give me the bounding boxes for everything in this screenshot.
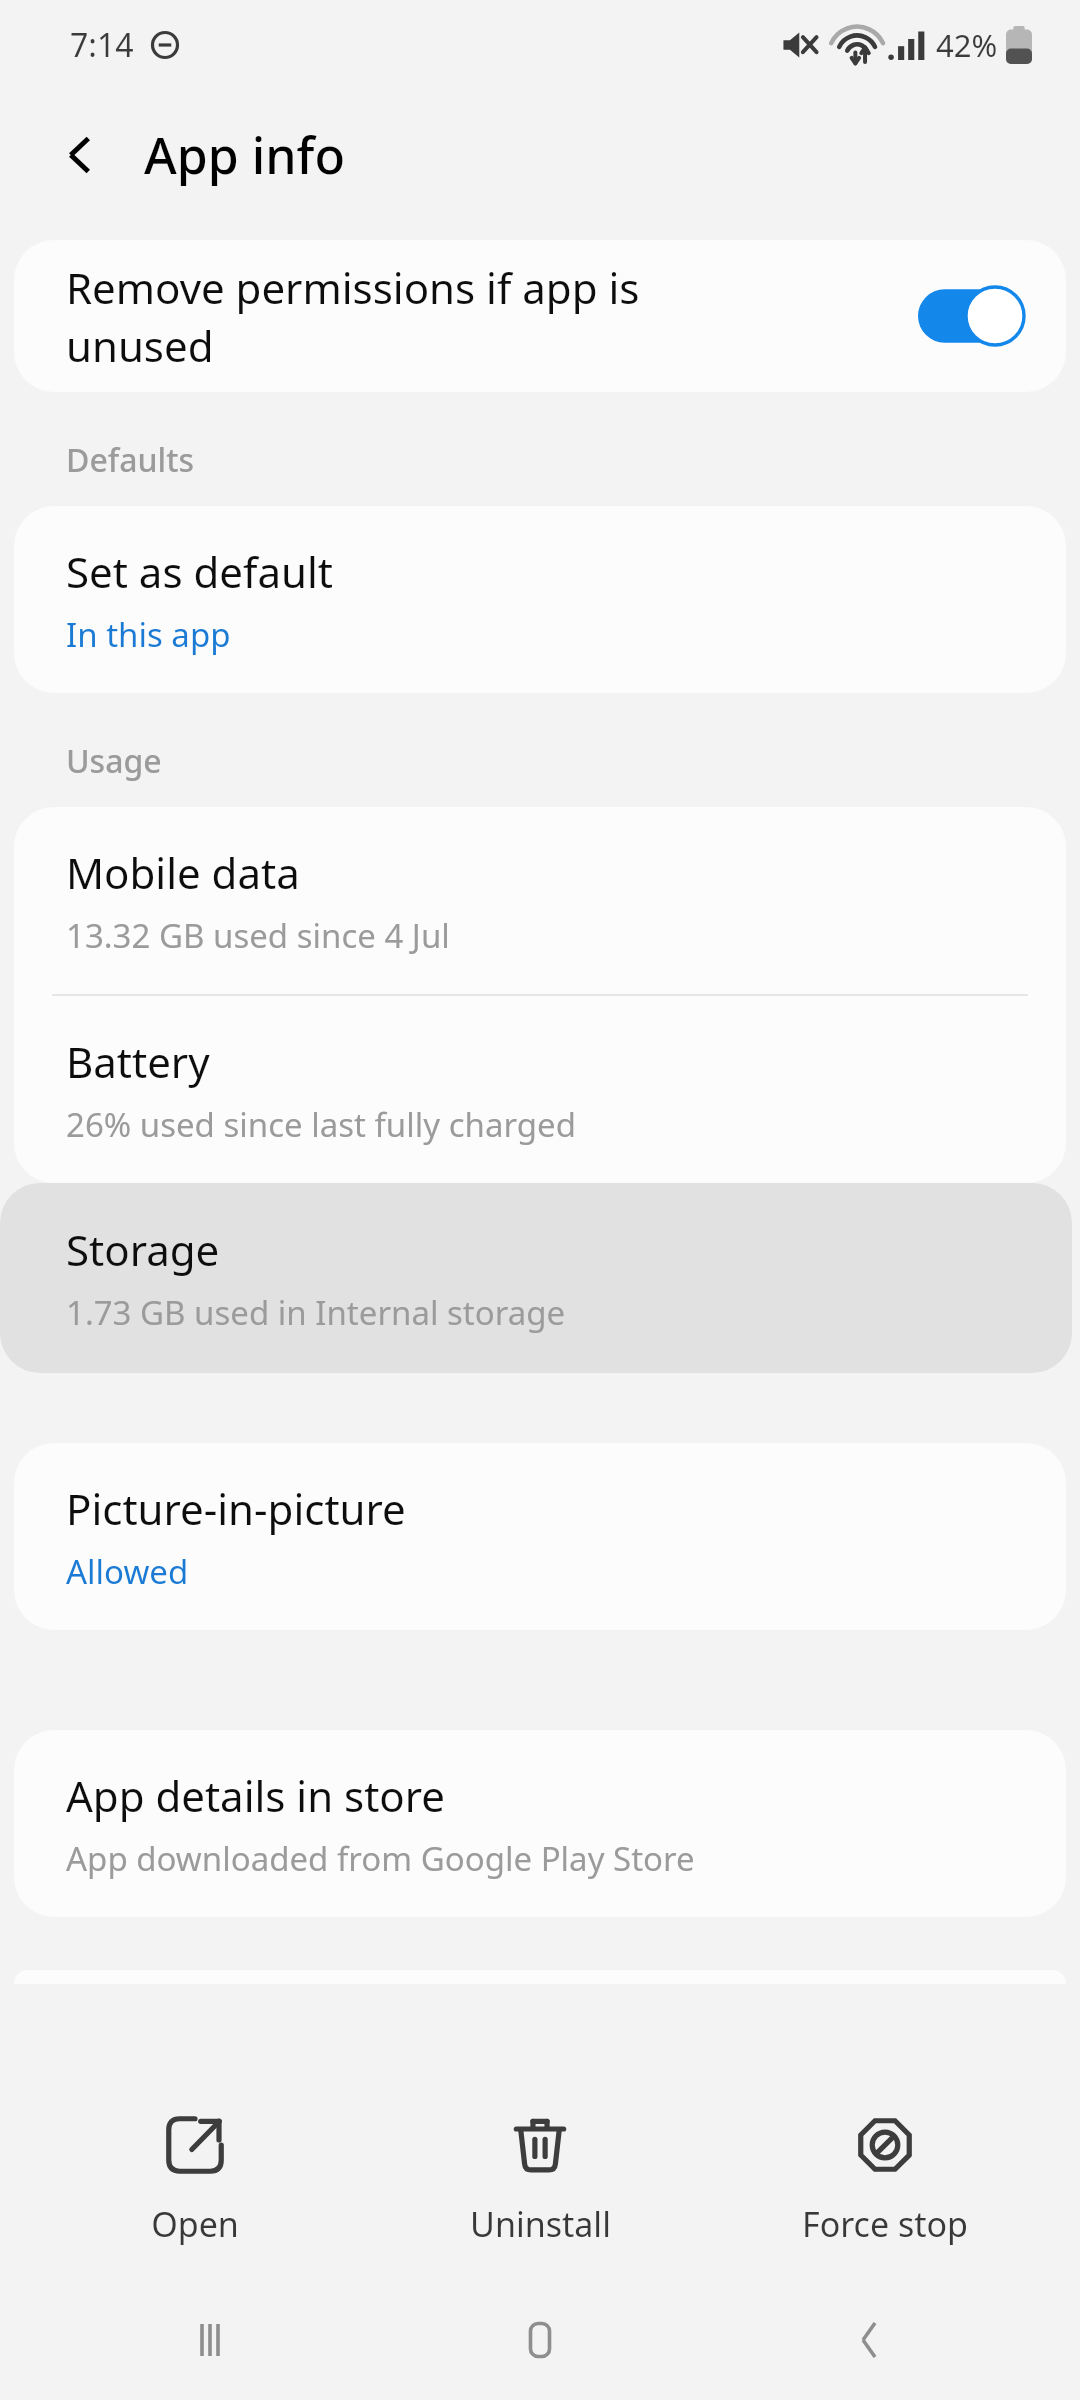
staticText: Open <box>151 2201 239 2247</box>
button[interactable]: App details in store <box>14 1730 1066 1917</box>
staticText: App downloaded from Google Play Store <box>66 1836 695 1881</box>
staticText: 1.73 GB used in Internal storage <box>66 1290 566 1335</box>
staticText: Force stop <box>802 2201 968 2247</box>
button[interactable]: Picture-in-picture <box>14 1443 1066 1630</box>
staticText: 7:14 <box>70 23 134 67</box>
staticText: In this app <box>66 612 231 657</box>
button[interactable]: Remove permissions if app is unused togg… <box>918 285 1026 347</box>
staticText: Mobile data <box>66 844 300 901</box>
button[interactable]: Mobile data <box>14 807 1066 994</box>
button[interactable]: Set as default <box>14 506 1066 693</box>
button[interactable]: Open <box>45 2099 345 2261</box>
staticText: Defaults <box>66 438 195 482</box>
button[interactable]: Recents <box>90 2280 330 2400</box>
staticText: Storage <box>66 1221 220 1278</box>
staticText: 13.32 GB used since 4 Jul <box>66 913 450 958</box>
button[interactable]: Battery <box>14 996 1066 1183</box>
button[interactable]: Force stop <box>735 2099 1035 2261</box>
staticText: 42% <box>936 24 998 66</box>
button[interactable]: Back <box>42 117 118 193</box>
button[interactable]: Back <box>750 2280 990 2400</box>
button[interactable]: Storage <box>0 1183 1072 1373</box>
staticText: Battery <box>66 1033 210 1090</box>
staticText: Remove permissions if app is unused <box>66 259 898 374</box>
staticText: Picture-in-picture <box>66 1480 406 1537</box>
staticText: 26% used since last fully charged <box>66 1102 576 1147</box>
staticText: Uninstall <box>470 2201 611 2247</box>
button[interactable]: Home <box>420 2280 660 2400</box>
staticText: Set as default <box>66 543 333 600</box>
staticText: Usage <box>66 739 162 783</box>
staticText: Allowed <box>66 1549 189 1594</box>
button[interactable]: Uninstall <box>390 2099 690 2261</box>
staticText: App details in store <box>66 1767 445 1824</box>
staticText: App info <box>144 121 345 189</box>
button[interactable]: Remove permissions if app is unused <box>14 240 1066 392</box>
